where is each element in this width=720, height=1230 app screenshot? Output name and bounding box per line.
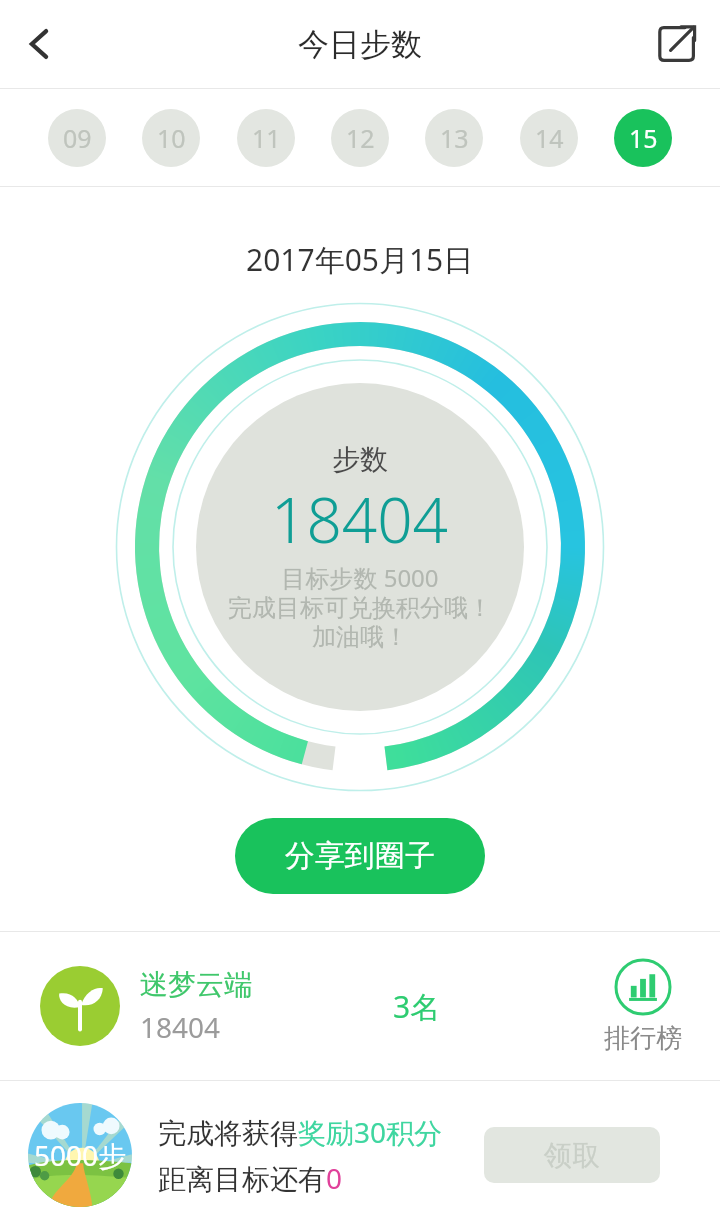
staticText: 15 <box>629 121 658 155</box>
staticText: 2017年05月15日 <box>246 239 474 280</box>
staticText: 目标步数 5000 完成目标可兑换积分哦！ 加油哦！ <box>228 561 492 652</box>
button[interactable]: 13 <box>425 109 483 167</box>
staticText: 14 <box>535 121 564 155</box>
button[interactable]: Share <box>648 15 706 73</box>
staticText: 09 <box>63 121 92 155</box>
button[interactable]: 14 <box>520 109 578 167</box>
button[interactable]: 10 <box>142 109 200 167</box>
staticText: 3名 <box>393 986 441 1027</box>
staticText: 11 <box>252 121 281 155</box>
button[interactable]: 领取 <box>484 1127 660 1183</box>
staticText: 领取 <box>544 1138 600 1173</box>
button[interactable]: 分享到圈子 <box>235 818 485 894</box>
button[interactable]: 排行榜 <box>596 958 690 1055</box>
staticText: 完成将获得奖励30积分 <box>158 1113 443 1151</box>
staticText: 13 <box>440 121 469 155</box>
staticText: 18404 <box>140 1008 221 1046</box>
staticText: 距离目标还有0 <box>158 1159 343 1197</box>
staticText: 迷梦云端 <box>140 967 252 1002</box>
staticText: 步数 <box>332 442 388 477</box>
button[interactable]: 15 <box>614 109 672 167</box>
staticText: 5000步 <box>34 1136 127 1174</box>
staticText: 排行榜 <box>604 1022 682 1055</box>
button[interactable]: 09 <box>48 109 106 167</box>
staticText: 今日步数 <box>298 25 422 64</box>
staticText: 10 <box>157 121 186 155</box>
button[interactable]: 12 <box>331 109 389 167</box>
button[interactable]: 迷梦云端 <box>0 932 720 1080</box>
staticText: 分享到圈子 <box>285 837 435 875</box>
staticText: 12 <box>346 121 375 155</box>
button[interactable]: 11 <box>237 109 295 167</box>
button[interactable]: Back <box>10 14 70 74</box>
staticText: 18404 <box>271 477 449 561</box>
